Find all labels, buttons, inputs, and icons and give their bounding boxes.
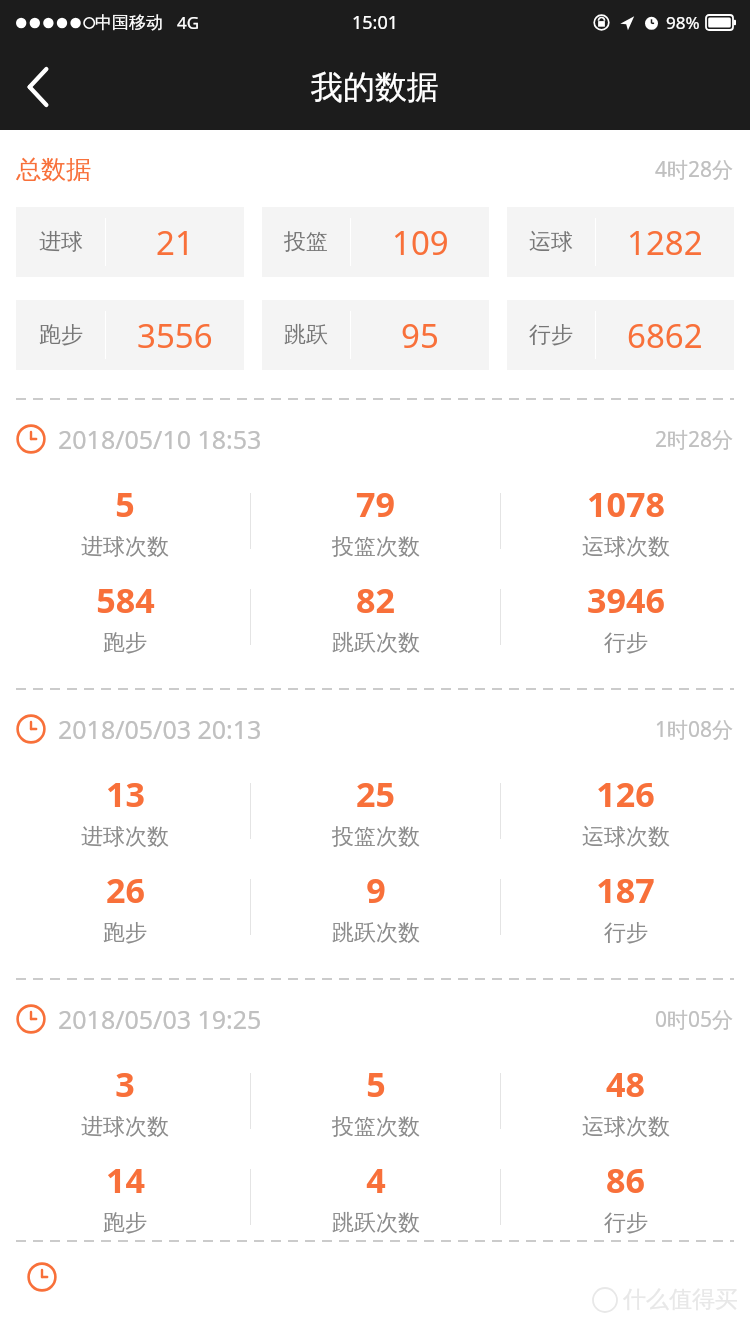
button[interactable]: 126: [501, 768, 750, 854]
staticText: 投篮次数: [332, 533, 420, 561]
button[interactable]: 25: [251, 768, 500, 854]
staticText: 跳跃次数: [332, 1209, 420, 1237]
button[interactable]: 跳跃: [262, 300, 489, 370]
button[interactable]: 4: [251, 1154, 500, 1240]
staticText: 3556: [137, 313, 213, 358]
staticText: 79: [356, 481, 395, 527]
staticText: 进球: [39, 228, 83, 256]
staticText: 126: [596, 771, 655, 817]
button[interactable]: 13: [0, 768, 250, 854]
staticText: 4G: [177, 11, 200, 34]
staticText: 什么值得买: [623, 1285, 738, 1314]
staticText: 跑步: [103, 1209, 147, 1237]
staticText: 进球次数: [81, 823, 169, 851]
staticText: 投篮: [284, 228, 328, 256]
button[interactable]: 5: [0, 478, 250, 564]
staticText: 15:01: [352, 10, 399, 35]
staticText: 跑步: [39, 321, 83, 349]
staticText: 运球次数: [582, 533, 670, 561]
button[interactable]: 3946: [501, 574, 750, 660]
staticText: 运球: [529, 228, 573, 256]
staticText: 109: [392, 220, 449, 265]
staticText: 投篮次数: [332, 1113, 420, 1141]
staticText: 584: [96, 577, 155, 623]
staticText: 0时05分: [655, 1005, 734, 1034]
staticText: 5: [115, 481, 135, 527]
button[interactable]: 2018/05/10 18:53: [16, 422, 734, 456]
staticText: 4: [366, 1157, 386, 1203]
staticText: 26: [106, 867, 145, 913]
staticText: 投篮次数: [332, 823, 420, 851]
staticText: 运球次数: [582, 1113, 670, 1141]
staticText: 2018/05/03 19:25: [58, 1002, 262, 1036]
button[interactable]: 79: [251, 478, 500, 564]
staticText: 1078: [587, 481, 665, 527]
staticText: 25: [356, 771, 395, 817]
staticText: 1时08分: [655, 715, 734, 744]
staticText: 中国移动: [95, 12, 163, 33]
staticText: 跳跃次数: [332, 629, 420, 657]
staticText: 跳跃次数: [332, 919, 420, 947]
staticText: 6862: [627, 313, 703, 358]
button[interactable]: 进球: [16, 207, 244, 277]
button[interactable]: 2018/05/03 20:13: [16, 712, 734, 746]
staticText: 9: [366, 867, 386, 913]
staticText: 187: [596, 867, 655, 913]
staticText: 进球次数: [81, 533, 169, 561]
staticText: 行步: [604, 1209, 648, 1237]
button[interactable]: 82: [251, 574, 500, 660]
staticText: 总数据: [16, 154, 91, 185]
button[interactable]: 187: [501, 864, 750, 950]
staticText: 2018/05/10 18:53: [58, 422, 262, 456]
staticText: 48: [606, 1061, 645, 1107]
staticText: 跑步: [103, 919, 147, 947]
button[interactable]: 1078: [501, 478, 750, 564]
staticText: 行步: [529, 321, 573, 349]
staticText: 21: [156, 220, 194, 265]
button[interactable]: 3: [0, 1058, 250, 1144]
staticText: 运球次数: [582, 823, 670, 851]
staticText: 3: [115, 1061, 135, 1107]
button[interactable]: 投篮: [262, 207, 489, 277]
button[interactable]: 行步: [507, 300, 734, 370]
button[interactable]: 584: [0, 574, 250, 660]
button[interactable]: 86: [501, 1154, 750, 1240]
button[interactable]: Back: [0, 44, 76, 130]
button[interactable]: 5: [251, 1058, 500, 1144]
staticText: 5: [366, 1061, 386, 1107]
staticText: 2018/05/03 20:13: [58, 712, 262, 746]
staticText: 跑步: [103, 629, 147, 657]
staticText: 1282: [627, 220, 703, 265]
staticText: 13: [106, 771, 145, 817]
staticText: 98%: [666, 11, 700, 34]
button[interactable]: 2018/05/03 19:25: [16, 1002, 734, 1036]
button[interactable]: 9: [251, 864, 500, 950]
button[interactable]: 48: [501, 1058, 750, 1144]
staticText: 3946: [587, 577, 665, 623]
staticText: 82: [356, 577, 395, 623]
staticText: 2时28分: [655, 425, 734, 454]
staticText: 跳跃: [284, 321, 328, 349]
button[interactable]: 运球: [507, 207, 734, 277]
button[interactable]: 跑步: [16, 300, 244, 370]
staticText: 14: [106, 1157, 145, 1203]
staticText: 我的数据: [311, 67, 439, 107]
staticText: 4时28分: [655, 155, 734, 184]
staticText: 95: [401, 313, 439, 358]
button[interactable]: 26: [0, 864, 250, 950]
staticText: 行步: [604, 629, 648, 657]
staticText: 86: [606, 1157, 645, 1203]
staticText: 进球次数: [81, 1113, 169, 1141]
staticText: 行步: [604, 919, 648, 947]
button[interactable]: 14: [0, 1154, 250, 1240]
